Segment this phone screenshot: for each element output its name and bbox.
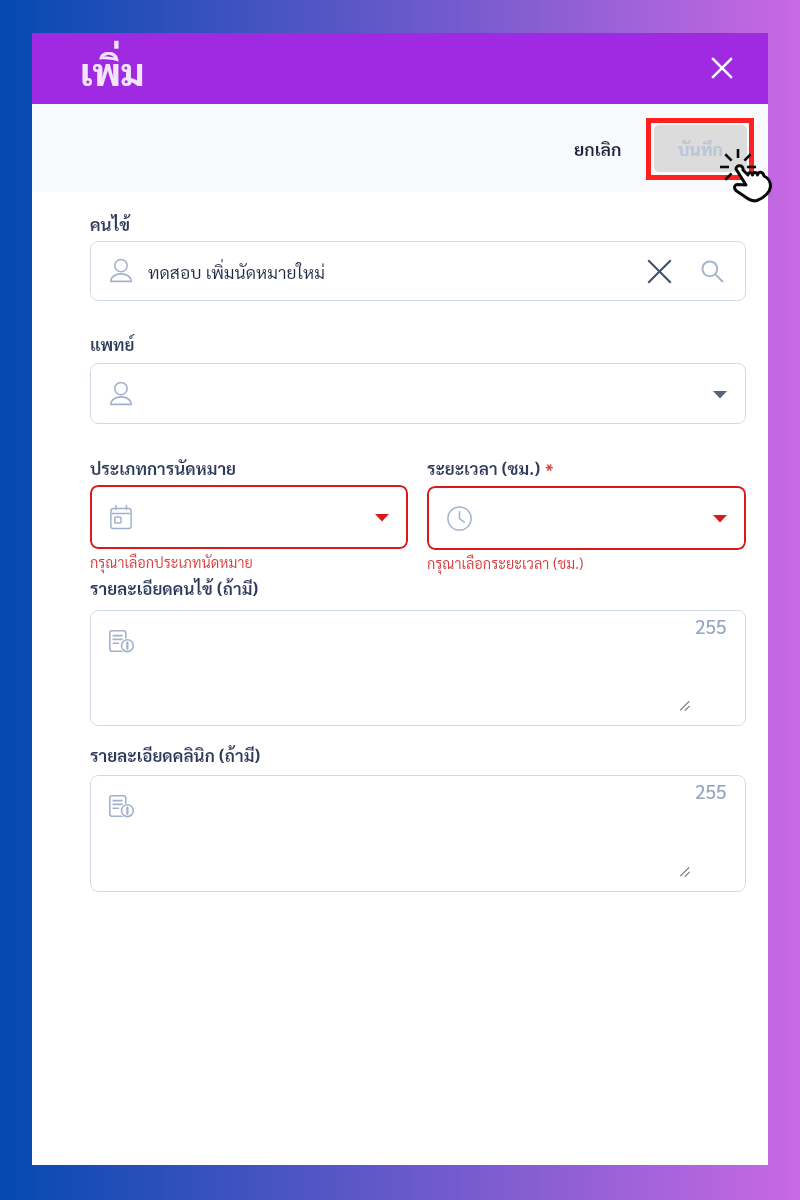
button[interactable]: Close xyxy=(700,46,744,90)
staticText: แพทย์ xyxy=(90,333,135,355)
button[interactable]: Search xyxy=(698,257,726,285)
button[interactable]: ทดสอบ เพิ่มนัดหมายใหม่ xyxy=(90,241,746,301)
staticText: กรุณาเลือกประเภทนัดหมาย xyxy=(90,553,253,572)
staticText: รายละเอียดคลินิก (ถ้ามี) xyxy=(90,744,261,766)
button[interactable]: ยกเลิก xyxy=(566,129,630,168)
staticText: กรุณาเลือกระยะเวลา (ชม.) xyxy=(427,554,584,573)
staticText: คนไข้ xyxy=(90,213,131,235)
staticText: * xyxy=(541,458,554,481)
staticText: ทดสอบ เพิ่มนัดหมายใหม่ xyxy=(148,260,325,283)
button[interactable]: 255 xyxy=(90,610,746,726)
staticText: ยกเลิก xyxy=(574,137,622,160)
staticText: บันทึก xyxy=(678,137,723,160)
staticText: เพิ่ม xyxy=(80,45,145,94)
button[interactable] xyxy=(427,486,746,550)
staticText: รายละเอียดคนไข้ (ถ้ามี) xyxy=(90,577,259,599)
button[interactable] xyxy=(90,363,746,424)
staticText: 255 xyxy=(695,779,727,804)
button[interactable]: บันทึก xyxy=(654,125,747,172)
button[interactable]: 255 xyxy=(90,775,746,892)
staticText: ระยะเวลา (ชม.) xyxy=(427,457,541,479)
staticText: ประเภทการนัดหมาย xyxy=(90,457,237,479)
staticText: 255 xyxy=(695,614,727,639)
button[interactable]: Clear xyxy=(645,257,673,285)
button[interactable] xyxy=(90,485,408,549)
